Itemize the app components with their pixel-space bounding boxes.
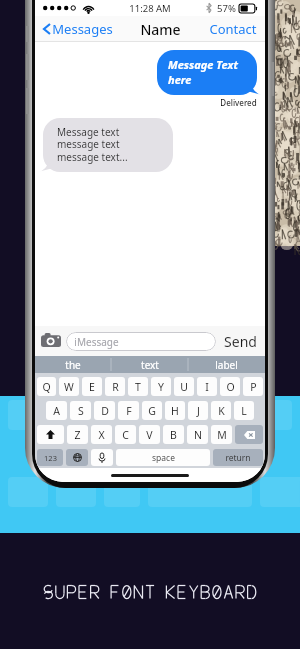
button[interactable]: L — [234, 401, 254, 420]
button[interactable]: K — [211, 401, 231, 420]
staticText: Messages — [52, 20, 113, 38]
staticText: iMessage — [74, 335, 119, 349]
button[interactable]: E — [82, 377, 102, 396]
button[interactable]: R — [105, 377, 125, 396]
staticText: A — [53, 404, 60, 418]
staticText: Message Text here — [168, 57, 243, 87]
button[interactable]: H — [165, 401, 185, 420]
button[interactable]: F — [118, 401, 139, 420]
staticText: space — [152, 452, 175, 464]
staticText: W — [64, 380, 74, 394]
button[interactable]: Message text message text message text..… — [43, 118, 173, 172]
button[interactable]: Message Text here — [157, 50, 257, 95]
button[interactable]: X — [91, 425, 112, 444]
button[interactable]: Dictate — [91, 449, 113, 466]
staticText: Q — [42, 380, 51, 394]
staticText: X — [98, 428, 105, 442]
button[interactable]: Backspace — [235, 425, 263, 444]
staticText: H — [171, 404, 179, 418]
staticText: 123 — [44, 453, 57, 463]
button[interactable]: label — [188, 356, 265, 373]
button[interactable]: G — [142, 401, 162, 420]
staticText: label — [215, 358, 238, 372]
button[interactable]: O — [220, 377, 240, 396]
button[interactable]: P — [243, 377, 263, 396]
button[interactable]: C — [115, 425, 136, 444]
button[interactable]: Y — [151, 377, 171, 396]
staticText: J — [197, 404, 200, 418]
staticText: M — [217, 428, 227, 442]
staticText: Send — [224, 332, 257, 351]
staticText: 57% — [217, 2, 236, 15]
button[interactable]: Send — [222, 329, 259, 354]
staticText: G — [148, 404, 156, 418]
button[interactable]: S — [70, 401, 91, 420]
button[interactable]: W — [59, 377, 79, 396]
staticText: S — [78, 404, 84, 418]
staticText: L — [241, 404, 247, 418]
button[interactable]: Shift — [37, 425, 64, 444]
staticText: Message text message text message text..… — [57, 125, 163, 164]
staticText: Y — [158, 380, 164, 394]
button[interactable]: iMessage — [66, 332, 216, 351]
button[interactable]: the — [35, 356, 111, 373]
button[interactable]: Contact — [206, 17, 260, 41]
button[interactable]: V — [139, 425, 160, 444]
staticText: E — [89, 380, 95, 394]
staticText: N — [194, 428, 202, 442]
button[interactable]: Messages — [40, 17, 116, 41]
staticText: U — [180, 380, 188, 394]
button[interactable]: 123 — [37, 449, 63, 466]
button[interactable]: U — [174, 377, 194, 396]
staticText: return — [225, 452, 251, 464]
button[interactable]: text — [111, 356, 188, 373]
button[interactable]: Q — [37, 377, 56, 396]
button[interactable]: return — [213, 449, 263, 466]
staticText: 11:28 AM — [129, 2, 171, 15]
button[interactable]: B — [163, 425, 184, 444]
staticText: Contact — [209, 20, 257, 38]
staticText: K — [218, 404, 225, 418]
staticText: T — [135, 380, 141, 394]
staticText: R — [112, 380, 119, 394]
button[interactable]: Change keyboard — [66, 449, 88, 466]
staticText: B — [170, 428, 177, 442]
staticText: Delivered — [220, 97, 257, 108]
staticText: Z — [74, 428, 81, 442]
button[interactable]: M — [211, 425, 232, 444]
staticText: I — [205, 380, 209, 394]
staticText: Name — [140, 20, 181, 39]
staticText: D — [101, 404, 109, 418]
button[interactable]: N — [187, 425, 208, 444]
staticText: V — [146, 428, 153, 442]
staticText: C — [122, 428, 129, 442]
button[interactable]: Z — [67, 425, 88, 444]
button[interactable]: D — [94, 401, 115, 420]
button[interactable]: I — [197, 377, 217, 396]
staticText: text — [141, 358, 159, 372]
staticText: O — [226, 380, 235, 394]
staticText: F — [126, 404, 132, 418]
staticText: P — [250, 380, 257, 394]
button[interactable]: A — [46, 401, 67, 420]
button[interactable]: space — [116, 449, 210, 466]
button[interactable]: J — [188, 401, 208, 420]
button[interactable]: Camera — [41, 332, 61, 350]
button[interactable]: T — [128, 377, 148, 396]
staticText: the — [65, 358, 81, 372]
